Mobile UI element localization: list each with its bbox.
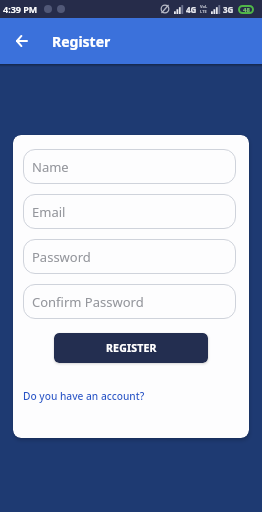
button[interactable] <box>16 35 28 47</box>
staticText: VoL LTE <box>200 4 208 14</box>
staticText: Register <box>52 32 111 51</box>
staticText: 3G <box>223 4 234 15</box>
staticText: REGISTER <box>106 341 157 355</box>
staticText: 48 <box>243 6 250 14</box>
staticText: Password <box>32 248 91 266</box>
staticText: Confirm Password <box>32 293 144 311</box>
button[interactable]: REGISTER <box>54 333 208 363</box>
button[interactable]: Do you have an account? <box>23 389 145 403</box>
staticText: 4G <box>186 4 197 15</box>
staticText: Email <box>32 203 66 221</box>
button[interactable]: Name <box>23 149 236 184</box>
button[interactable]: Confirm Password <box>23 284 236 319</box>
button[interactable]: Email <box>23 194 236 229</box>
button[interactable]: Password <box>23 239 236 274</box>
staticText: Name <box>32 158 69 176</box>
staticText: 4:39 PM <box>3 3 38 15</box>
